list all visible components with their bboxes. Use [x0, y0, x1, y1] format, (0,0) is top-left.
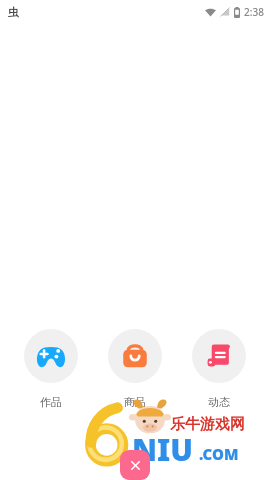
other: 作品 — [24, 329, 78, 383]
staticText: 虫 — [8, 5, 19, 19]
button[interactable]: 商品 — [108, 329, 162, 409]
staticText: 2:38 — [244, 5, 264, 19]
staticText: 动态 — [208, 395, 230, 409]
staticText: 作品 — [40, 395, 62, 409]
button[interactable]: Close — [120, 450, 150, 480]
staticText: .COM — [199, 444, 239, 464]
staticText: 商品 — [124, 395, 146, 409]
staticText: NIU — [132, 429, 193, 470]
button[interactable]: 动态 — [192, 329, 246, 409]
staticText: 乐牛游戏网 — [170, 415, 245, 434]
button[interactable]: 作品 — [24, 329, 78, 409]
other: 动态 — [192, 329, 246, 383]
other: 商品 — [108, 329, 162, 383]
